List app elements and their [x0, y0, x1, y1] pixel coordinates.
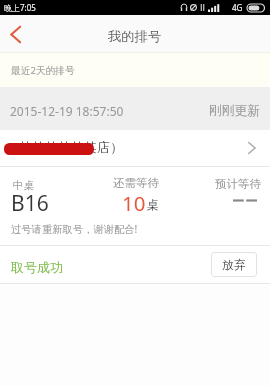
staticText: 中桌: [13, 179, 34, 192]
staticText: 晚上7:05: [4, 2, 36, 13]
staticText: 2015-12-19 18:57:50: [10, 103, 124, 119]
staticText: 放弃: [222, 257, 246, 272]
staticText: 桌: [147, 197, 159, 212]
staticText: 我的排号: [108, 28, 162, 45]
button[interactable]: 放弃: [211, 252, 257, 277]
staticText: 最近2天的排号: [11, 64, 75, 77]
staticText: 还需等待: [113, 176, 159, 190]
staticText: B16: [11, 189, 49, 218]
staticText: （某某某某某某店）: [6, 139, 123, 155]
staticText: 10: [122, 189, 146, 217]
button[interactable]: Back: [0, 15, 32, 53]
staticText: 预计等待: [215, 177, 261, 191]
staticText: 过号请重新取号，谢谢配合!: [11, 222, 138, 236]
staticText: 取号成功: [11, 259, 63, 275]
staticText: 刚刚更新: [209, 103, 260, 119]
button[interactable]: （某某某某某某店）: [0, 130, 270, 166]
staticText: 4G: [232, 2, 243, 13]
